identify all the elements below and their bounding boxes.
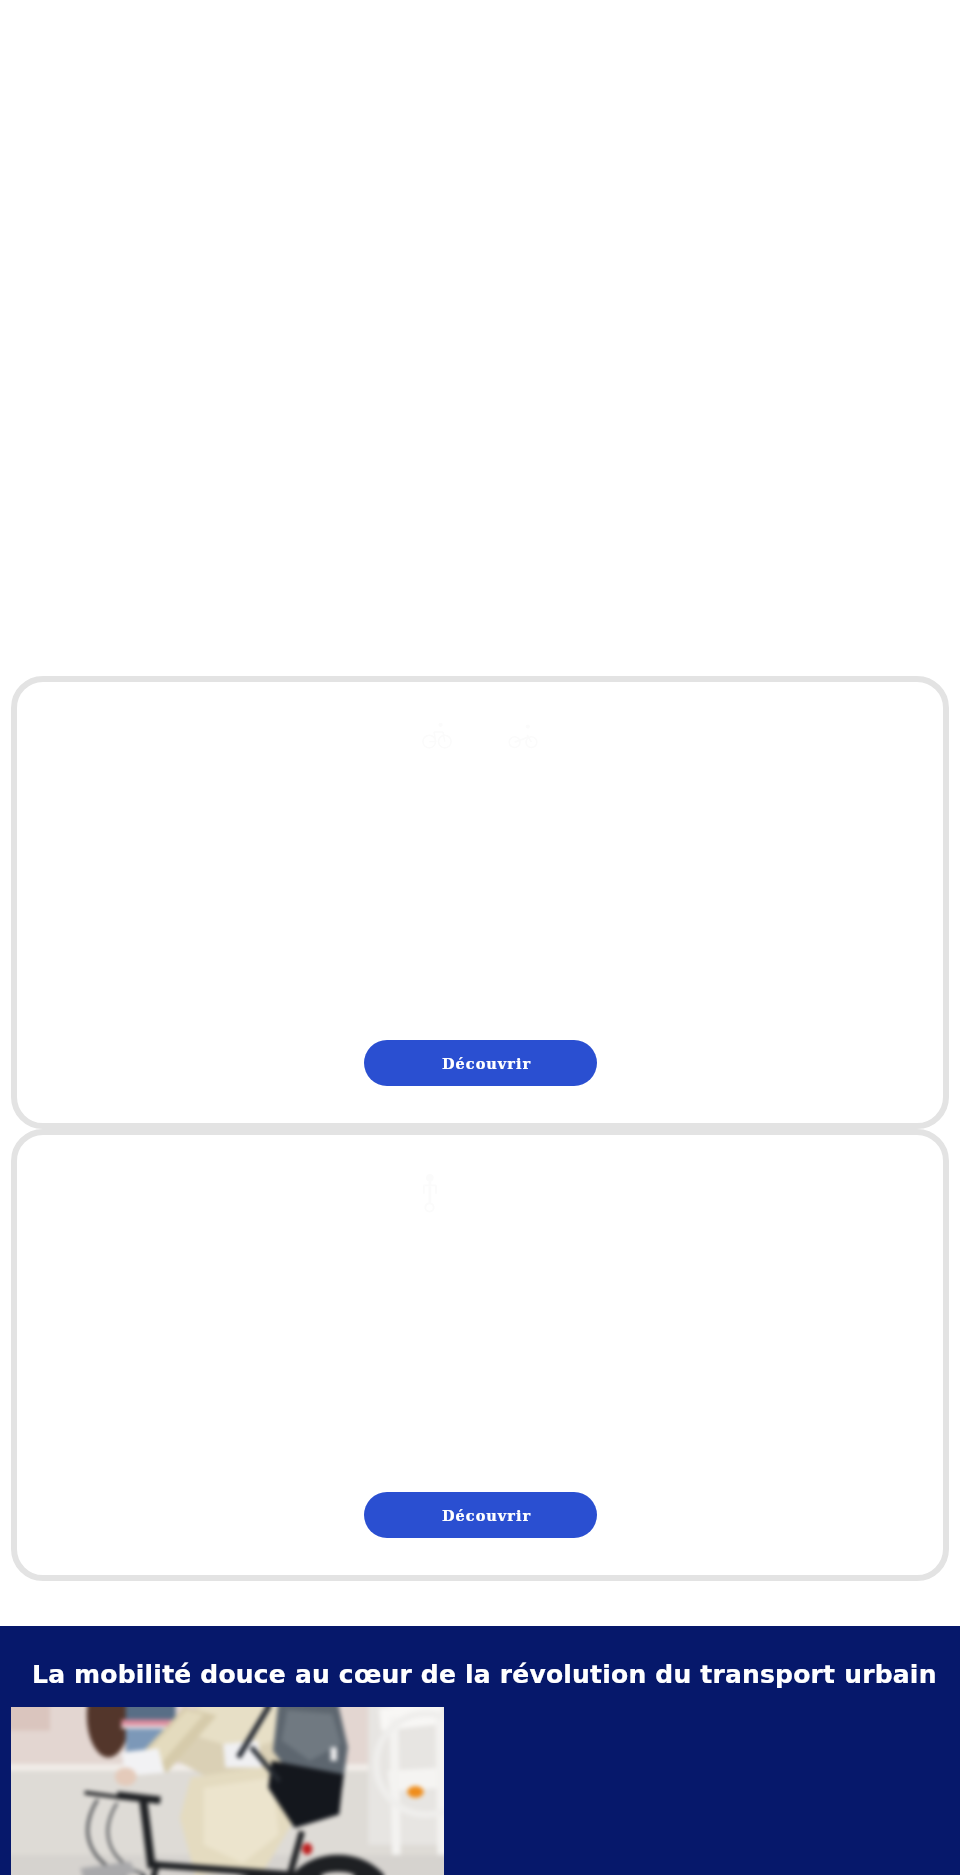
staticText: Découvrir xyxy=(442,1507,532,1524)
button[interactable]: Découvrir xyxy=(11,1129,949,1581)
button[interactable]: Découvrir xyxy=(11,676,949,1129)
button[interactable]: Découvrir xyxy=(364,1040,597,1086)
staticText: Découvrir xyxy=(442,1055,532,1072)
staticText: La mobilité douce au cœur de la révoluti… xyxy=(32,1660,937,1689)
button[interactable]: Découvrir xyxy=(364,1492,597,1538)
other: Photo d'un cycliste en ville xyxy=(11,1707,444,1875)
